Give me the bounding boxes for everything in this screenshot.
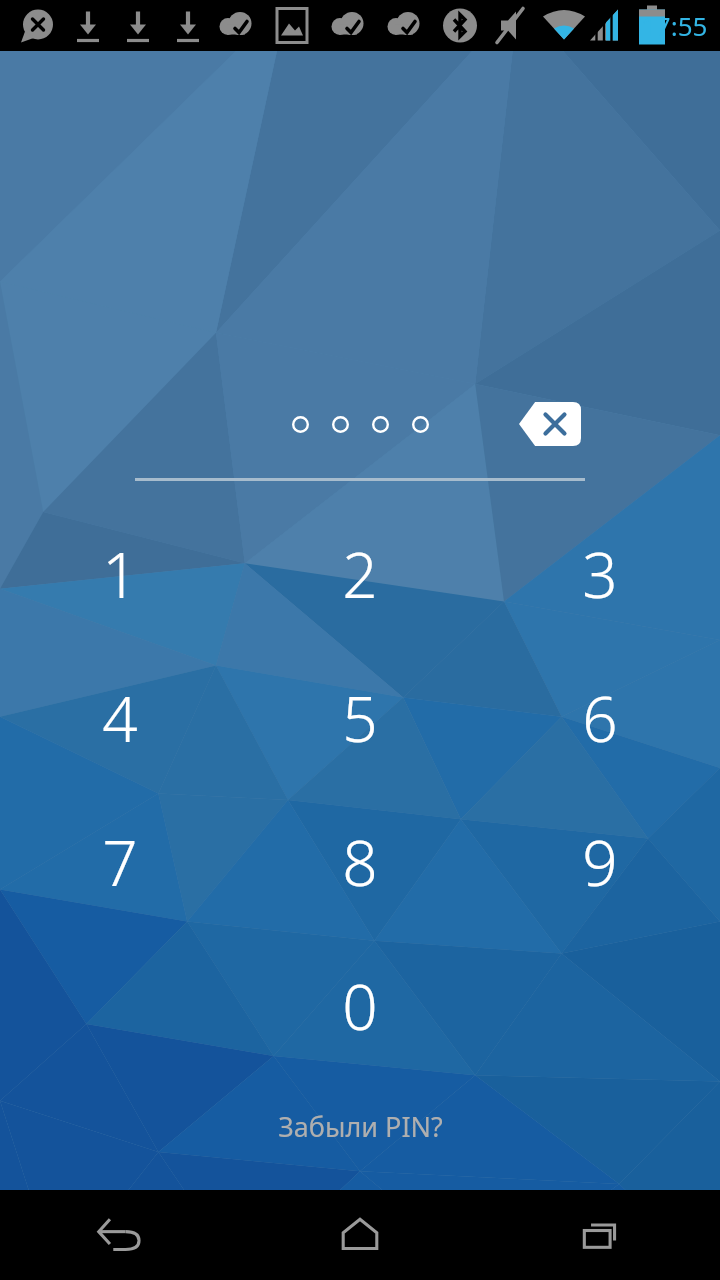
staticText: 5 bbox=[342, 676, 378, 760]
button[interactable]: Recents bbox=[480, 1190, 720, 1280]
button[interactable]: 9 bbox=[480, 790, 720, 934]
button[interactable]: 5 bbox=[240, 646, 480, 790]
button[interactable]: 7 bbox=[0, 790, 240, 934]
staticText: 4 bbox=[102, 676, 138, 760]
button[interactable]: 3 bbox=[480, 502, 720, 646]
button[interactable]: 6 bbox=[480, 646, 720, 790]
button[interactable]: 2 bbox=[240, 502, 480, 646]
button[interactable]: 8 bbox=[240, 790, 480, 934]
staticText: 8 bbox=[342, 820, 378, 904]
button[interactable]: Home bbox=[240, 1190, 480, 1280]
staticText: 1 bbox=[102, 532, 138, 616]
staticText: 7 bbox=[102, 820, 138, 904]
staticText: 9 bbox=[582, 820, 618, 904]
button[interactable]: Забыли PIN? bbox=[0, 1096, 720, 1156]
staticText: 17:55 bbox=[641, 8, 708, 43]
button[interactable]: Back bbox=[0, 1190, 240, 1280]
button[interactable]: Backspace bbox=[519, 400, 581, 448]
staticText: 6 bbox=[582, 676, 618, 760]
button[interactable]: 1 bbox=[0, 502, 240, 646]
button[interactable]: 4 bbox=[0, 646, 240, 790]
staticText: 3 bbox=[582, 532, 618, 616]
staticText: 0 bbox=[342, 964, 378, 1048]
staticText: Забыли PIN? bbox=[278, 1108, 443, 1145]
button[interactable]: 0 bbox=[240, 934, 480, 1078]
staticText: 2 bbox=[342, 532, 378, 616]
